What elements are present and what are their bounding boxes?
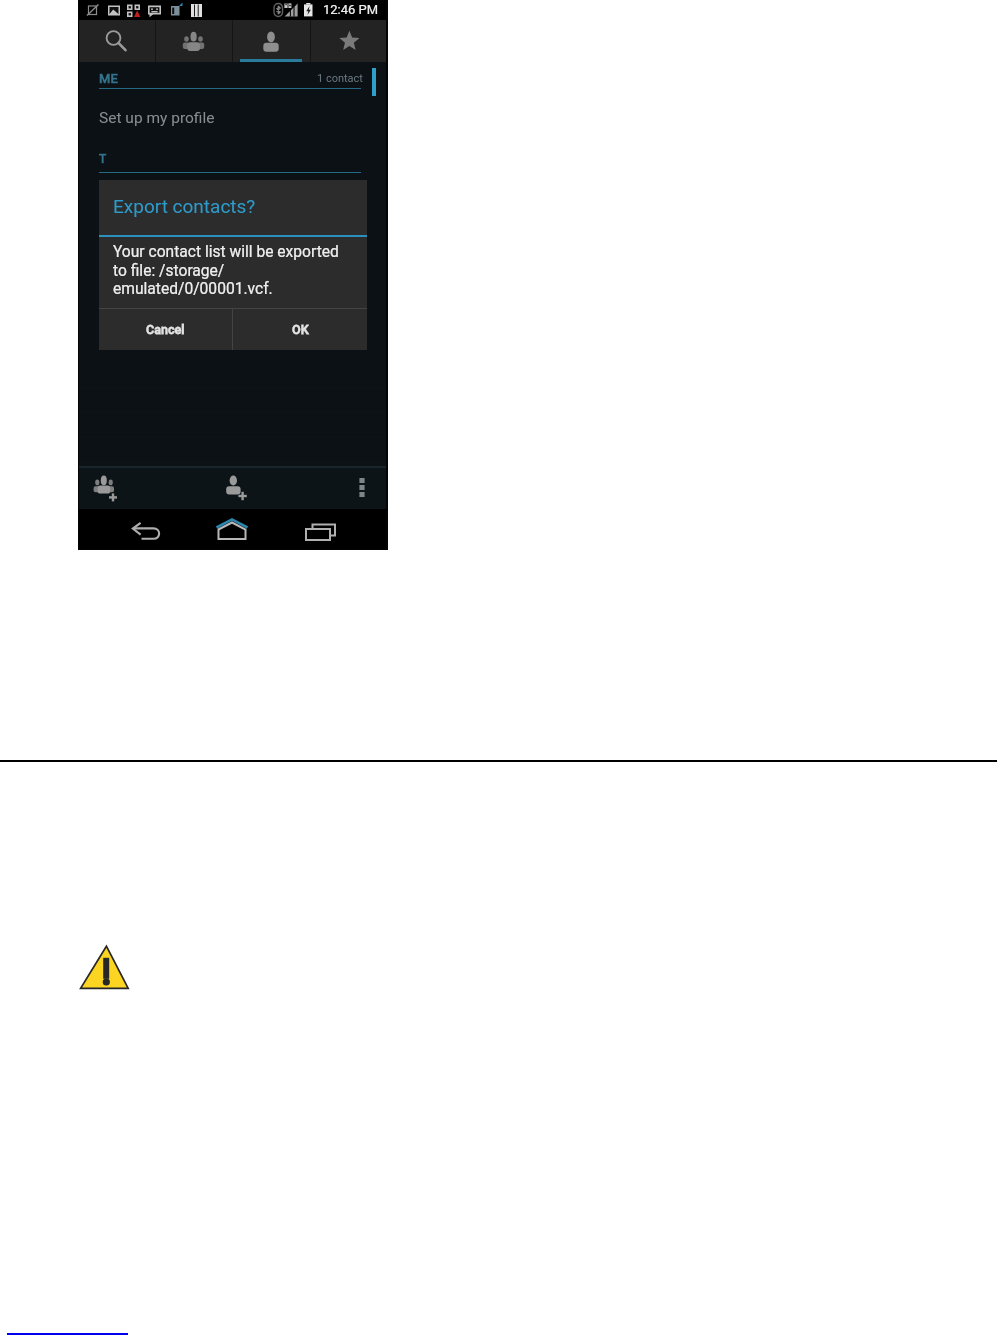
staticText: T bbox=[99, 152, 107, 166]
button[interactable]: Back bbox=[127, 518, 167, 545]
staticText: Cancel bbox=[146, 322, 185, 337]
button[interactable]: Add contact bbox=[216, 470, 258, 506]
staticText: 12:46 PM bbox=[323, 2, 379, 17]
button[interactable]: Groups bbox=[155, 20, 232, 62]
staticText: Your contact list will be exported to fi… bbox=[113, 243, 357, 297]
button[interactable]: More options bbox=[348, 470, 376, 504]
staticText: ME bbox=[99, 71, 118, 86]
button[interactable]: Favorites bbox=[310, 20, 388, 62]
button[interactable]: Set up my profile bbox=[78, 98, 388, 138]
button[interactable]: Cancel bbox=[99, 309, 232, 350]
staticText: OK bbox=[292, 322, 309, 337]
button[interactable]: Recents bbox=[300, 518, 340, 545]
staticText: 1 contact bbox=[317, 72, 363, 85]
button[interactable]: Contacts bbox=[232, 20, 310, 62]
button[interactable]: OK bbox=[233, 309, 367, 350]
staticText: Set up my profile bbox=[99, 109, 215, 127]
button[interactable]: Home bbox=[212, 514, 252, 544]
staticText: Export contacts? bbox=[113, 195, 256, 217]
button[interactable]: Add group bbox=[85, 470, 127, 506]
button[interactable]: Search bbox=[78, 20, 155, 62]
